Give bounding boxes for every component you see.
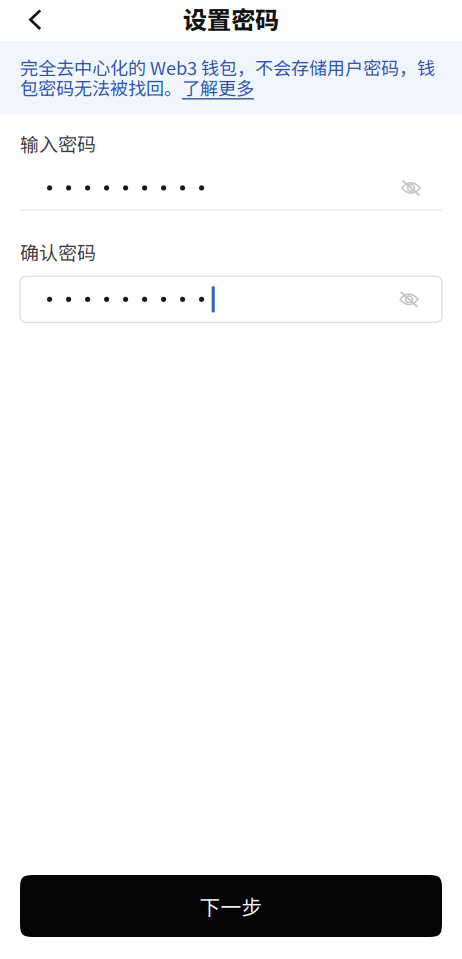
staticText: 完全去中心化的 Web3 钱包，不会存储用户密码，钱 [20,54,435,80]
staticText: 了解更多 [182,74,254,101]
staticText: 包密码无法被找回。 [20,74,182,101]
button[interactable]: 下一步 [20,875,442,937]
button[interactable]: Show password [389,166,433,210]
staticText: 输入密码 [20,129,96,157]
staticText: 确认密码 [20,238,96,265]
button[interactable]: Back [0,0,72,41]
button[interactable]: Show confirm password [387,277,431,321]
staticText: 设置密码 [183,1,279,36]
staticText: 下一步 [199,891,262,921]
button[interactable]: 了解更多 [182,74,254,101]
